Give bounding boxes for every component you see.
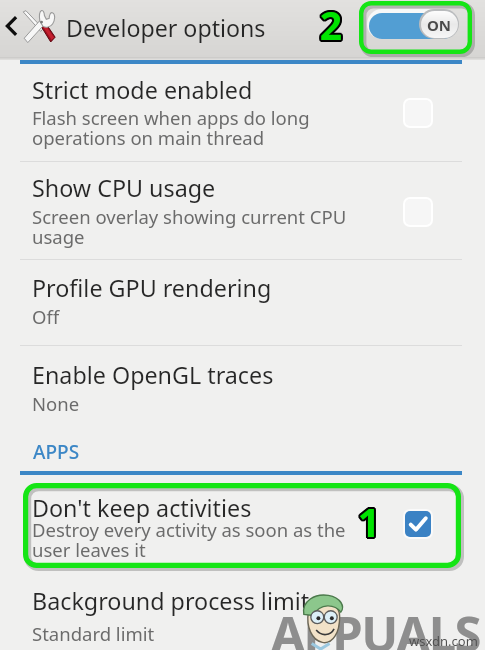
staticText: 2 xyxy=(318,0,346,40)
button[interactable]: Toggle setting xyxy=(403,197,433,227)
staticText: 1 xyxy=(356,495,384,537)
staticText: Don't keep activities xyxy=(32,492,252,524)
staticText: 1 xyxy=(355,493,383,535)
staticText: 1 xyxy=(354,495,382,537)
staticText: Background process limit xyxy=(32,585,310,617)
staticText: Show CPU usage xyxy=(32,172,216,204)
staticText: 2 xyxy=(319,0,347,41)
button[interactable]: Toggle setting xyxy=(403,509,433,539)
staticText: 1 xyxy=(356,494,384,536)
staticText: 1 xyxy=(355,495,383,537)
staticText: 2 xyxy=(315,0,343,39)
staticText: None xyxy=(32,391,80,416)
staticText: 2 xyxy=(316,0,344,42)
staticText: 1 xyxy=(354,497,382,539)
staticText: 1 xyxy=(357,494,385,536)
staticText: 2 xyxy=(315,0,343,40)
staticText: 1 xyxy=(356,493,384,535)
staticText: 2 xyxy=(318,0,346,39)
staticText: 2 xyxy=(317,0,345,40)
staticText: Destroy every activity as soon as the us… xyxy=(32,517,346,562)
staticText: 2 xyxy=(317,0,345,42)
staticText: 1 xyxy=(355,494,383,536)
staticText: 1 xyxy=(354,496,382,538)
staticText: wsxdn.com xyxy=(409,632,478,650)
staticText: 2 xyxy=(318,0,346,41)
staticText: 2 xyxy=(317,0,345,38)
staticText: 2 xyxy=(316,0,344,38)
staticText: 1 xyxy=(356,496,384,538)
staticText: Flash screen when apps do long operation… xyxy=(32,105,310,150)
staticText: 1 xyxy=(356,497,384,539)
staticText: 1 xyxy=(357,495,385,537)
button[interactable]: Toggle setting xyxy=(403,98,433,128)
staticText: 1 xyxy=(355,496,383,538)
staticText: 2 xyxy=(316,0,344,39)
staticText: Strict mode enabled xyxy=(32,74,253,106)
button[interactable] xyxy=(0,162,485,259)
button[interactable] xyxy=(0,64,485,161)
button[interactable]: Developer options on xyxy=(367,9,458,39)
staticText: 2 xyxy=(316,0,344,41)
staticText: 2 xyxy=(315,0,343,41)
staticText: 2 xyxy=(316,0,344,40)
button[interactable] xyxy=(0,260,485,345)
staticText: 1 xyxy=(355,497,383,539)
staticText: Standard limit xyxy=(32,621,155,646)
button[interactable] xyxy=(0,476,485,572)
button[interactable] xyxy=(0,578,485,650)
button[interactable] xyxy=(0,346,485,430)
staticText: Off xyxy=(32,304,60,329)
staticText: 2 xyxy=(319,0,347,40)
button[interactable]: APPS xyxy=(33,439,80,465)
staticText: 1 xyxy=(353,496,381,538)
staticText: ON xyxy=(427,15,452,35)
staticText: Enable OpenGL traces xyxy=(32,359,274,391)
staticText: Profile GPU rendering xyxy=(32,272,272,304)
staticText: 2 xyxy=(317,0,345,39)
staticText: 2 xyxy=(318,0,346,42)
staticText: 2 xyxy=(318,0,346,38)
staticText: Developer options xyxy=(66,12,266,44)
staticText: 1 xyxy=(353,495,381,537)
staticText: 1 xyxy=(357,496,385,538)
button[interactable]: Back xyxy=(0,10,22,42)
staticText: 1 xyxy=(353,494,381,536)
staticText: 1 xyxy=(354,494,382,536)
staticText: 2 xyxy=(317,0,345,41)
staticText: APPUALS xyxy=(271,600,481,650)
staticText: APPS xyxy=(33,439,80,465)
staticText: 2 xyxy=(319,0,347,39)
staticText: Screen overlay showing current CPU usage xyxy=(32,204,347,249)
staticText: 1 xyxy=(354,493,382,535)
